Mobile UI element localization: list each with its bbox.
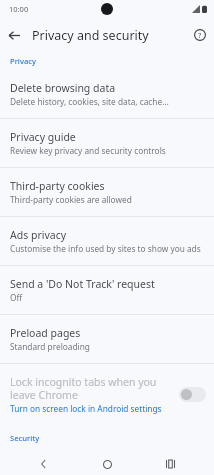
staticText: Lock incognito tabs when you leave Chrom… [10,375,173,402]
button[interactable]: Delete browsing data [0,74,214,114]
button[interactable]: Toggle off [179,387,206,402]
staticText: Delete browsing data [10,81,116,95]
button[interactable]: Home [97,454,117,474]
staticText: Privacy and security [32,27,149,44]
staticText: Standard preloading [10,341,90,352]
button[interactable]: Back [0,21,28,49]
staticText: Privacy [10,56,36,66]
staticText: Delete history, cookies, site data, cach… [10,96,169,107]
staticText: Security [10,433,40,443]
button[interactable]: Back [34,454,54,474]
staticText: Send a 'Do Not Track' request [10,277,155,291]
staticText: Turn on screen lock in Android settings [10,403,162,414]
button[interactable]: Ads privacy [0,221,214,261]
staticText: Third-party cookies [10,179,105,193]
staticText: 10:00 [9,4,29,14]
staticText: Ads privacy [10,228,67,242]
staticText: Third-party cookies are allowed [10,194,132,205]
button[interactable]: Privacy guide [0,123,214,163]
staticText: Off [10,292,23,303]
staticText: Review key privacy and security controls [10,145,166,156]
button[interactable]: Recent apps [160,454,180,474]
button[interactable]: Third-party cookies [0,172,214,212]
staticText: ? [198,30,202,40]
button[interactable]: Lock incognito tabs when you leave Chrom… [0,368,214,421]
staticText: Preload pages [10,326,81,340]
staticText: Customise the info used by sites to show… [10,243,201,254]
button[interactable]: Preload pages [0,319,214,359]
staticText: Privacy guide [10,130,76,144]
button[interactable]: Help [186,21,214,49]
button[interactable]: Send a 'Do Not Track' request [0,270,214,310]
